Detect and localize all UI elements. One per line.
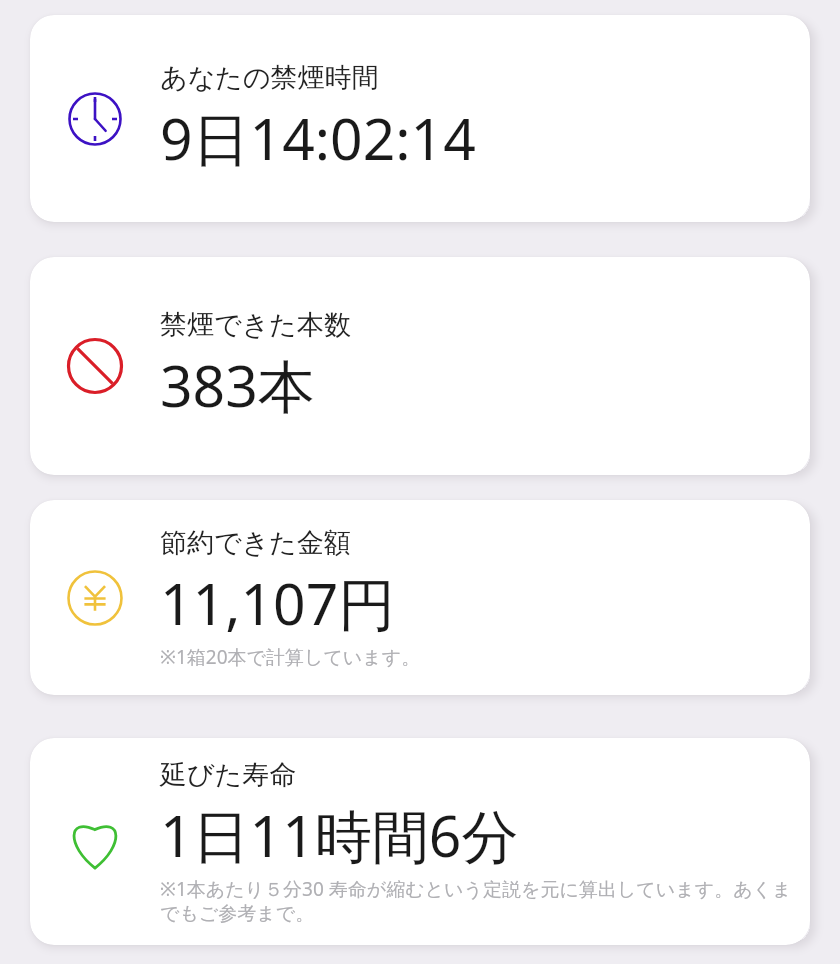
staticText: 9日14:02:14 bbox=[160, 99, 476, 177]
button[interactable]: Money saved bbox=[30, 500, 810, 695]
other: Time since quitting bbox=[30, 15, 160, 222]
staticText: ※1本あたり５分30 寿命が縮むという定説を元に算出しています。あくまでもご参考… bbox=[160, 876, 798, 926]
other: Life expectancy gained bbox=[30, 738, 160, 945]
button[interactable]: Life expectancy gained bbox=[30, 738, 810, 945]
staticText: 延びた寿命 bbox=[160, 758, 297, 792]
staticText: 禁煙できた本数 bbox=[160, 308, 351, 342]
staticText: 1日11時間6分 bbox=[160, 796, 519, 874]
staticText: あなたの禁煙時間 bbox=[160, 61, 379, 95]
staticText: ※1箱20本で計算しています。 bbox=[160, 644, 421, 670]
button[interactable]: Cigarettes not smoked bbox=[30, 257, 810, 475]
staticText: 11,107円 bbox=[160, 564, 396, 642]
other: Money saved bbox=[30, 500, 160, 695]
button[interactable]: Time since quitting bbox=[30, 15, 810, 222]
staticText: 節約できた金額 bbox=[160, 526, 351, 560]
staticText: 383本 bbox=[160, 346, 315, 424]
other: Cigarettes not smoked bbox=[30, 257, 160, 475]
